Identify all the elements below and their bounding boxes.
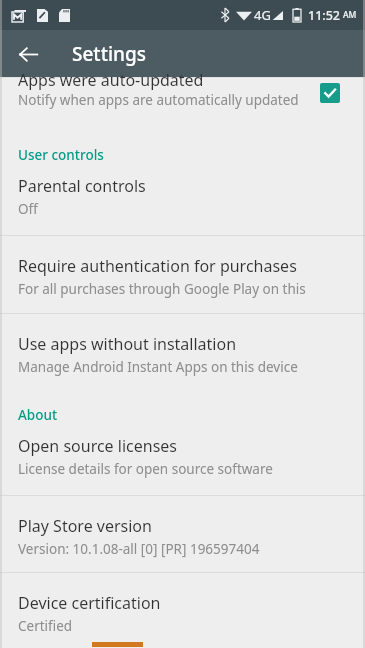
button[interactable]: Play Store version xyxy=(0,496,365,558)
button[interactable]: Require authentication for purchases xyxy=(0,236,365,298)
button[interactable]: Use apps without installation xyxy=(0,314,365,376)
staticText: 11:52 xyxy=(308,7,341,24)
staticText: Require authentication for purchases xyxy=(18,255,297,277)
staticText: Parental controls xyxy=(18,175,146,197)
staticText: Play Store version xyxy=(18,515,152,537)
staticText: Open source licenses xyxy=(18,435,177,457)
staticText: Certified xyxy=(18,617,73,635)
staticText: 4G xyxy=(254,6,271,24)
staticText: Apps were auto-updated xyxy=(18,69,204,91)
staticText: Settings xyxy=(72,41,146,67)
staticText: License details for open source software xyxy=(18,460,273,478)
staticText: For all purchases through Google Play on… xyxy=(18,280,349,298)
button[interactable]: Device certification xyxy=(0,573,365,635)
button[interactable]: Notify when apps are automatically updat… xyxy=(312,75,348,111)
staticText: Use apps without installation xyxy=(18,333,237,355)
staticText: Off xyxy=(18,200,38,218)
button[interactable]: Open source licenses xyxy=(0,426,365,478)
staticText: Notify when apps are automatically updat… xyxy=(18,91,299,109)
button[interactable]: Parental controls xyxy=(0,166,365,218)
staticText: Manage Android Instant Apps on this devi… xyxy=(18,358,298,376)
button[interactable]: Navigate up xyxy=(8,34,48,74)
staticText: Device certification xyxy=(18,592,161,614)
staticText: Version: 10.1.08-all [0] [PR] 196597404 xyxy=(18,540,260,558)
staticText: AM xyxy=(343,9,357,21)
staticText: About xyxy=(18,406,58,424)
staticText: User controls xyxy=(18,146,104,164)
